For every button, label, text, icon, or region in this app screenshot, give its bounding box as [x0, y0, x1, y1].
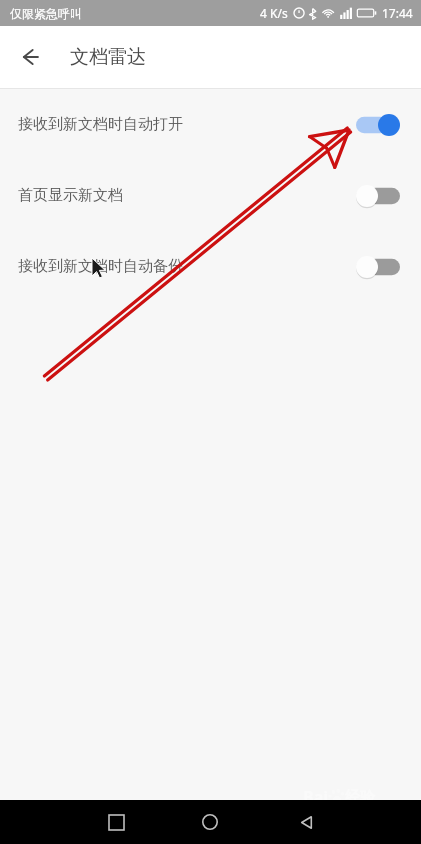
staticText: jingyan.baidu.com: [303, 808, 390, 822]
button[interactable]: 首页显示新文档: [0, 160, 421, 231]
staticText: 仅限紧急呼叫: [10, 6, 82, 21]
button[interactable]: Recents: [96, 802, 136, 842]
button[interactable]: Back: [8, 35, 52, 79]
button[interactable]: Back: [286, 802, 326, 842]
staticText: 17:44: [382, 5, 413, 21]
button[interactable]: Switch on: [356, 114, 400, 136]
button[interactable]: Switch off: [356, 256, 400, 278]
button[interactable]: 接收到新文档时自动备份: [0, 231, 421, 302]
staticText: 接收到新文档时自动打开: [18, 115, 183, 134]
staticText: 4 K/s: [260, 5, 288, 21]
button[interactable]: Switch off: [356, 185, 400, 207]
button[interactable]: 接收到新文档时自动打开: [0, 89, 421, 160]
button[interactable]: Home: [190, 802, 230, 842]
staticText: 首页显示新文档: [18, 186, 123, 205]
staticText: 文档雷达: [70, 45, 146, 69]
staticText: 接收到新文档时自动备份: [18, 257, 183, 276]
staticText: 经验: [345, 788, 375, 807]
staticText: Bai: [303, 786, 329, 808]
